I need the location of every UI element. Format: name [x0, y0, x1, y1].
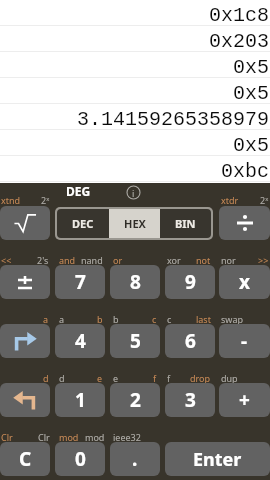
staticText: Enter	[193, 447, 242, 472]
staticText: Clr	[38, 431, 50, 443]
staticText: i	[132, 187, 135, 199]
staticText: mod	[85, 431, 105, 443]
staticText: .	[132, 446, 138, 472]
button[interactable]: Enter	[165, 442, 270, 476]
staticText: c	[152, 313, 157, 325]
staticText: BIN	[175, 216, 196, 231]
button[interactable]: Square root	[0, 206, 50, 240]
staticText: HEX	[124, 216, 146, 231]
staticText: swap	[221, 313, 243, 325]
staticText: e	[113, 372, 119, 384]
staticText: 4	[75, 328, 86, 354]
staticText: 0x5	[232, 56, 269, 79]
staticText: 3.14159265358979	[76, 108, 269, 131]
staticText: d	[59, 372, 65, 384]
staticText: e	[97, 372, 103, 384]
button[interactable]: x	[219, 265, 270, 299]
staticText: a	[43, 313, 49, 325]
staticText: or	[113, 254, 123, 266]
button[interactable]: Divide	[219, 206, 270, 240]
staticText: DEC	[72, 216, 94, 231]
button[interactable]: Undo	[0, 383, 50, 417]
button[interactable]: 3	[165, 383, 215, 417]
button[interactable]: 1	[55, 383, 105, 417]
staticText: C	[19, 446, 32, 472]
button[interactable]: 2	[110, 383, 160, 417]
staticText: -	[241, 328, 248, 354]
button[interactable]: Plus minus	[0, 265, 50, 299]
button[interactable]: 0	[55, 442, 105, 476]
staticText: x	[239, 269, 250, 295]
button[interactable]: 5	[110, 324, 160, 358]
staticText: not	[196, 254, 211, 266]
staticText: >>	[258, 254, 269, 266]
button[interactable]: DEC	[57, 209, 109, 238]
staticText: 1	[75, 387, 86, 413]
staticText: 0	[75, 446, 86, 472]
staticText: 6	[185, 328, 196, 354]
staticText: 0x1c8	[208, 4, 269, 27]
button[interactable]: -	[219, 324, 270, 358]
staticText: 0x5	[232, 82, 269, 105]
staticText: Clr	[1, 431, 13, 443]
staticText: b	[97, 313, 103, 325]
button[interactable]: HEX	[109, 209, 160, 238]
staticText: <<	[1, 254, 12, 266]
staticText: b	[113, 313, 119, 325]
staticText: xor	[167, 254, 181, 266]
staticText: xtdr	[221, 194, 239, 206]
staticText: 0x203	[208, 30, 269, 53]
button[interactable]: 7	[55, 265, 105, 299]
staticText: dup	[221, 372, 238, 384]
staticText: 0x5	[232, 134, 269, 157]
staticText: last	[196, 313, 211, 325]
staticText: 5	[130, 328, 141, 354]
staticText: d	[43, 372, 49, 384]
staticText: 3	[185, 387, 196, 413]
button[interactable]: 4	[55, 324, 105, 358]
staticText: nand	[81, 254, 103, 266]
staticText: 9	[185, 269, 196, 295]
staticText: f	[153, 372, 157, 384]
button[interactable]: BIN	[160, 209, 211, 238]
staticText: a	[59, 313, 65, 325]
button[interactable]: +	[219, 383, 270, 417]
staticText: 2ˣ	[41, 194, 50, 206]
staticText: and	[59, 254, 76, 266]
button[interactable]: C	[0, 442, 50, 476]
staticText: 2	[130, 387, 141, 413]
button[interactable]: 6	[165, 324, 215, 358]
staticText: c	[167, 313, 172, 325]
staticText: mod	[59, 431, 79, 443]
staticText: nor	[221, 254, 236, 266]
staticText: xtnd	[1, 194, 21, 206]
staticText: ieee32	[113, 431, 141, 443]
staticText: 7	[75, 269, 86, 295]
button[interactable]: 8	[110, 265, 160, 299]
button[interactable]: .	[110, 442, 160, 476]
staticText: 2ˣ	[260, 194, 269, 206]
staticText: f	[167, 372, 171, 384]
staticText: 2's	[37, 254, 49, 266]
staticText: +	[239, 387, 250, 413]
staticText: DEG	[66, 183, 91, 199]
staticText: 0xbc	[220, 160, 269, 183]
button[interactable]: 9	[165, 265, 215, 299]
button[interactable]: Swap	[0, 324, 50, 358]
staticText: drop	[190, 372, 211, 384]
staticText: 8	[130, 269, 141, 295]
button[interactable]: Info	[126, 185, 141, 200]
